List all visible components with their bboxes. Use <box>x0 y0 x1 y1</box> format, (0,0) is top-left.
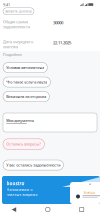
button[interactable]: Recents <box>79 207 84 212</box>
button[interactable]: смотреть договор <box>3 8 34 15</box>
staticText: Что такое услуга-пауза <box>6 80 47 84</box>
button[interactable]: Back <box>12 207 16 212</box>
staticText: 22.11.2025 <box>53 40 71 45</box>
button[interactable]: Возможна ли отсрочка <box>3 91 49 102</box>
staticText: Возможна ли отсрочка <box>6 94 46 99</box>
staticText: 9:41 <box>3 2 10 7</box>
staticText: Общая сумма задолженности <box>3 19 30 29</box>
staticText: 30000 <box>53 20 63 25</box>
button[interactable]: boostra <box>2 176 100 204</box>
staticText: У вас остались задолженности <box>6 163 60 167</box>
button[interactable]: Мои документы <box>3 113 97 132</box>
staticText: Подробнее <box>3 52 22 57</box>
button[interactable]: Условия автоплатежа <box>3 62 47 73</box>
button[interactable]: У вас остались задолженности <box>3 160 63 170</box>
staticText: boostra <box>6 180 24 187</box>
button[interactable]: Остались вопросы? <box>3 139 44 149</box>
staticText: Напоминаем о платеже вовремя <box>6 187 37 197</box>
staticText: смотреть договор <box>5 9 32 13</box>
button[interactable]: Home <box>45 207 50 212</box>
staticText: Остались вопросы? <box>6 142 41 146</box>
staticText: Мои документы <box>6 118 34 123</box>
staticText: Дата очередного платежа <box>3 39 33 49</box>
button[interactable]: Что такое услуга-пауза <box>3 77 50 87</box>
staticText: Условия автоплатежа <box>6 65 44 70</box>
staticText: Помощь <box>82 190 95 195</box>
